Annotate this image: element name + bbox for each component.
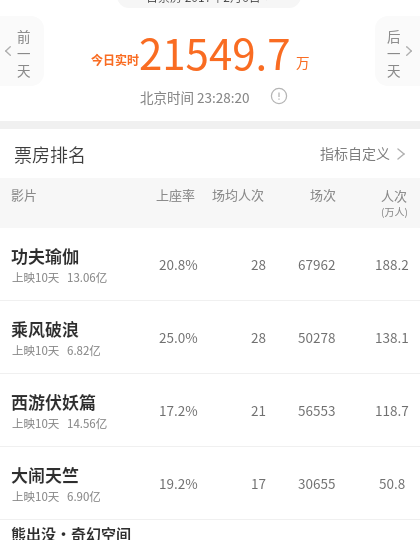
- staticText: 28: [251, 327, 266, 347]
- staticText: 一: [17, 43, 31, 63]
- staticText: 14.56亿: [67, 415, 108, 432]
- staticText: 30655: [298, 473, 336, 493]
- staticText: 天: [17, 60, 31, 80]
- staticText: 功夫瑜伽: [11, 243, 79, 268]
- button[interactable]: 日票房 2017年2月6日: [117, 0, 301, 8]
- staticText: 天: [387, 60, 401, 80]
- staticText: 乘风破浪: [11, 316, 79, 341]
- staticText: 13.06亿: [67, 269, 108, 286]
- button[interactable]: 熊出没·奇幻空间: [0, 520, 420, 540]
- button[interactable]: 后一天: [375, 16, 420, 86]
- staticText: 21549.7: [139, 21, 291, 82]
- staticText: 上座率: [156, 185, 196, 204]
- button[interactable]: 功夫瑜伽: [0, 228, 420, 301]
- staticText: 后: [387, 26, 401, 46]
- staticText: 118.7: [375, 400, 409, 420]
- staticText: 上映10天: [12, 342, 60, 359]
- staticText: 19.2%: [159, 473, 198, 493]
- staticText: 20.8%: [159, 254, 198, 274]
- staticText: 17: [251, 473, 266, 493]
- staticText: 西游伏妖篇: [11, 389, 96, 414]
- staticText: 前: [17, 26, 31, 46]
- staticText: 北京时间 23:28:20: [140, 87, 250, 107]
- staticText: 一: [387, 43, 401, 63]
- staticText: 上映10天: [12, 415, 60, 432]
- staticText: 上映10天: [12, 488, 60, 505]
- staticText: 今日实时: [91, 51, 140, 68]
- staticText: 影片: [11, 185, 38, 204]
- button[interactable]: 说明: [271, 88, 287, 104]
- staticText: 28: [251, 254, 266, 274]
- button[interactable]: 前一天: [0, 16, 44, 86]
- staticText: 熊出没·奇幻空间: [11, 523, 132, 540]
- staticText: 138.1: [375, 327, 409, 347]
- staticText: 56553: [298, 400, 336, 420]
- button[interactable]: 乘风破浪: [0, 301, 420, 374]
- staticText: 万: [296, 52, 310, 72]
- staticText: 大闹天竺: [11, 462, 79, 487]
- staticText: 指标自定义: [320, 143, 390, 163]
- staticText: 50278: [298, 327, 336, 347]
- button[interactable]: 西游伏妖篇: [0, 374, 420, 447]
- staticText: 上映10天: [12, 269, 60, 286]
- staticText: 25.0%: [159, 327, 198, 347]
- button[interactable]: 指标自定义: [320, 136, 405, 170]
- staticText: 人次: [381, 186, 408, 205]
- staticText: 21: [251, 400, 266, 420]
- staticText: 票房排名: [14, 141, 86, 167]
- staticText: 日票房 2017年2月6日: [146, 0, 261, 5]
- staticText: 场次: [310, 185, 337, 204]
- staticText: 50.8: [379, 473, 406, 493]
- staticText: 67962: [298, 254, 336, 274]
- staticText: 6.90亿: [67, 488, 101, 505]
- staticText: 场均人次: [212, 185, 265, 204]
- staticText: (万人): [381, 204, 408, 218]
- staticText: 188.2: [375, 254, 409, 274]
- staticText: 17.2%: [159, 400, 198, 420]
- staticText: 6.82亿: [67, 342, 101, 359]
- button[interactable]: 大闹天竺: [0, 447, 420, 520]
